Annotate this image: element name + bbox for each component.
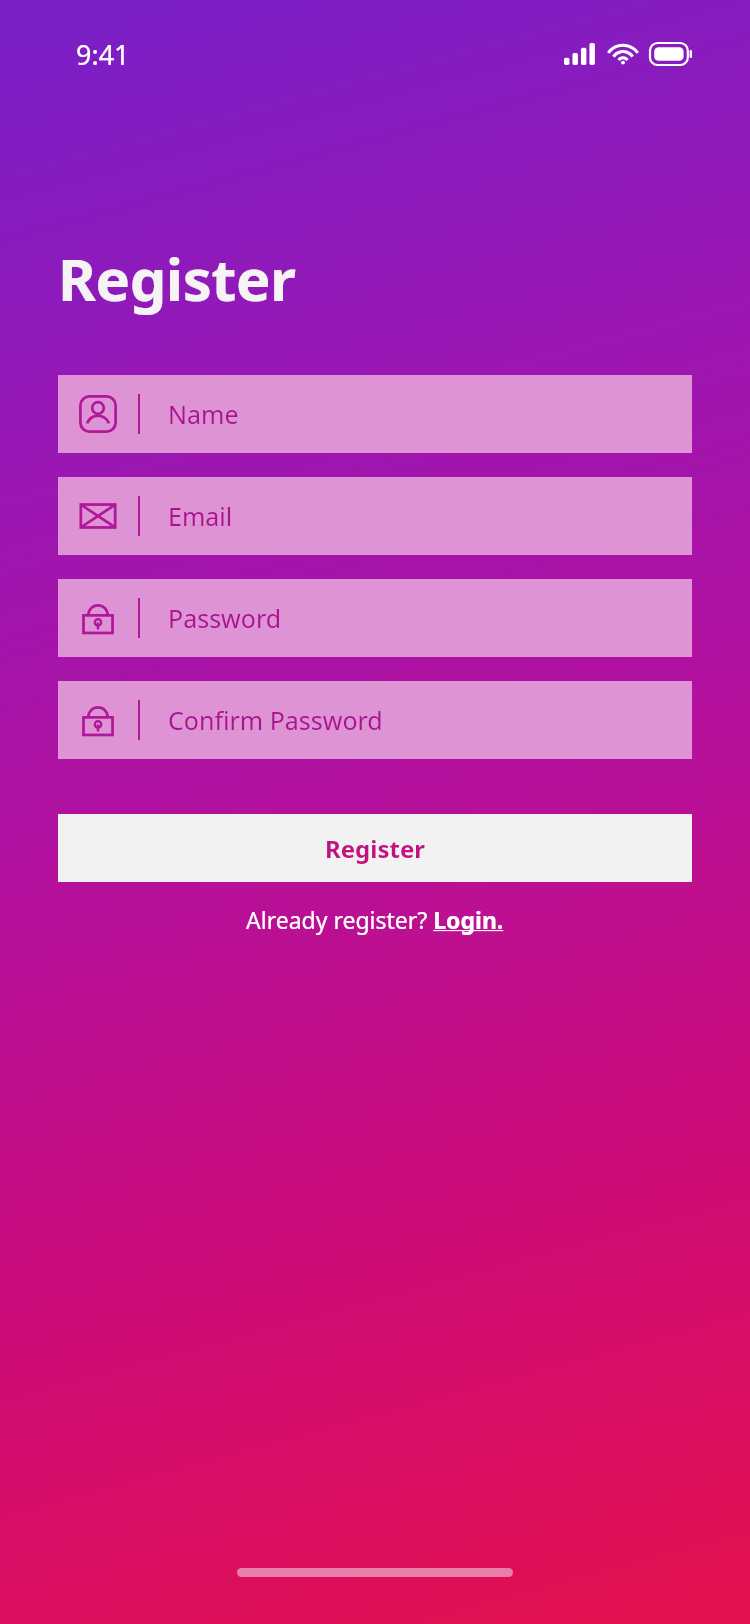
staticText: Already register? Login.	[246, 904, 504, 935]
staticText: Password	[168, 601, 282, 635]
button[interactable]: Confirm Password	[58, 681, 692, 759]
button[interactable]: Register	[58, 814, 692, 882]
button[interactable]: Email	[58, 477, 692, 555]
staticText: Register	[58, 239, 296, 318]
staticText: Email	[168, 499, 233, 533]
staticText: Register	[325, 832, 425, 865]
button[interactable]: Name	[58, 375, 692, 453]
staticText: 9:41	[76, 36, 130, 73]
button[interactable]: Already register? Login.	[238, 900, 512, 939]
staticText: Confirm Password	[168, 703, 383, 737]
button[interactable]: Password	[58, 579, 692, 657]
staticText: Name	[168, 397, 239, 431]
